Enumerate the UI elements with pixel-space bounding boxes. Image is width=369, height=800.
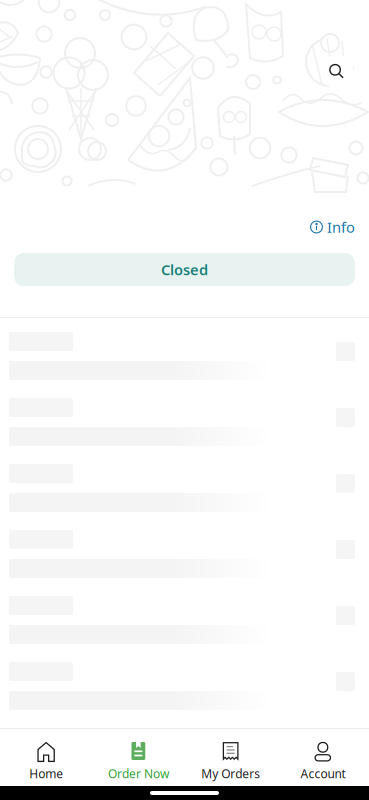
button[interactable]: Search — [320, 55, 353, 88]
button[interactable]: Closed — [14, 253, 355, 286]
staticText: Home — [29, 766, 63, 781]
button[interactable]: Order Now — [92, 729, 184, 786]
staticText: Order Now — [108, 766, 169, 781]
button[interactable]: My Orders — [184, 729, 277, 786]
staticText: Info — [327, 217, 355, 237]
staticText: Account — [300, 766, 345, 781]
staticText: My Orders — [201, 766, 260, 781]
staticText: Closed — [161, 260, 208, 279]
button[interactable]: Home — [0, 729, 92, 786]
button[interactable]: Account — [277, 729, 369, 786]
button[interactable]: Info — [310, 217, 355, 237]
